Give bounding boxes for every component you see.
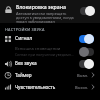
staticText: Чувствительность	[15, 84, 75, 90]
button[interactable]: Выключить	[76, 58, 96, 69]
staticText: Блокировка экрана	[16, 3, 66, 10]
staticText: Выкл.	[77, 73, 89, 78]
button[interactable]: Без звука	[0, 58, 100, 69]
button[interactable]: Блокировка экрана	[0, 0, 100, 23]
staticText: Без звука	[15, 60, 76, 67]
button[interactable]: Таймер	[0, 69, 100, 81]
staticText: НАСТРОЙКИ ЗВУКА	[5, 27, 45, 32]
staticText: Сигнал	[15, 35, 76, 42]
staticText: Таймер	[15, 72, 77, 78]
button[interactable]: Включить	[76, 45, 96, 58]
staticText: Вспышка сповещении	[15, 46, 61, 52]
staticText: Высок.	[75, 85, 89, 90]
staticText: Сигнал при получении уведомлений	[15, 52, 74, 57]
staticText: Автоматически запрещать доступ к уведомл…	[16, 11, 75, 23]
button[interactable]: Чувствительность	[0, 81, 100, 93]
button[interactable]: Вспышка сповещении	[0, 45, 100, 58]
button[interactable]: Выключить	[76, 32, 96, 45]
button[interactable]: Сигнал	[0, 32, 100, 45]
button[interactable]: Выключить	[77, 4, 97, 18]
